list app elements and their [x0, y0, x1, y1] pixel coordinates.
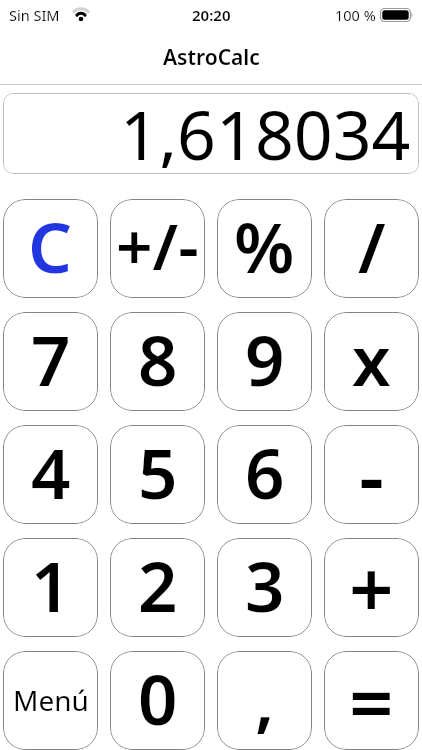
staticText: x — [352, 312, 391, 406]
staticText: + — [349, 538, 394, 634]
staticText: 9 — [245, 312, 285, 406]
button[interactable]: = — [324, 651, 419, 750]
button[interactable]: + — [324, 538, 419, 637]
staticText: = — [349, 651, 394, 747]
staticText: Sin SIM — [9, 5, 60, 25]
staticText: 5 — [138, 425, 178, 519]
button[interactable]: 8 — [110, 312, 205, 411]
button[interactable]: 4 — [3, 425, 98, 524]
button[interactable]: 1 — [3, 538, 98, 637]
button[interactable]: 6 — [217, 425, 312, 524]
staticText: 0 — [138, 651, 178, 745]
staticText: 8 — [138, 312, 178, 406]
staticText: 4 — [31, 425, 71, 519]
staticText: C — [28, 199, 73, 293]
button[interactable]: 5 — [110, 425, 205, 524]
button[interactable]: +/- — [110, 199, 205, 298]
staticText: 3 — [245, 538, 285, 632]
button[interactable]: % — [217, 199, 312, 298]
staticText: , — [255, 651, 275, 745]
button[interactable]: - — [324, 425, 419, 524]
staticText: 7 — [31, 312, 71, 406]
staticText: +/- — [116, 202, 199, 289]
staticText: % — [234, 199, 295, 293]
staticText: - — [359, 425, 384, 521]
button[interactable]: 2 — [110, 538, 205, 637]
staticText: AstroCalc — [163, 43, 260, 72]
staticText: / — [358, 199, 386, 293]
staticText: 100 % — [335, 5, 376, 25]
button[interactable]: Menú — [3, 651, 98, 750]
button[interactable]: 7 — [3, 312, 98, 411]
staticText: Menú — [13, 681, 89, 719]
button[interactable]: 9 — [217, 312, 312, 411]
staticText: 2 — [138, 538, 178, 632]
staticText: 6 — [245, 425, 285, 519]
staticText: 1,618034 — [120, 93, 411, 168]
button[interactable]: C — [3, 199, 98, 298]
button[interactable]: / — [324, 199, 419, 298]
button[interactable]: x — [324, 312, 419, 411]
button[interactable]: 3 — [217, 538, 312, 637]
button[interactable]: , — [217, 651, 312, 750]
staticText: 20:20 — [192, 5, 231, 25]
staticText: 1 — [31, 538, 71, 632]
button[interactable]: 0 — [110, 651, 205, 750]
